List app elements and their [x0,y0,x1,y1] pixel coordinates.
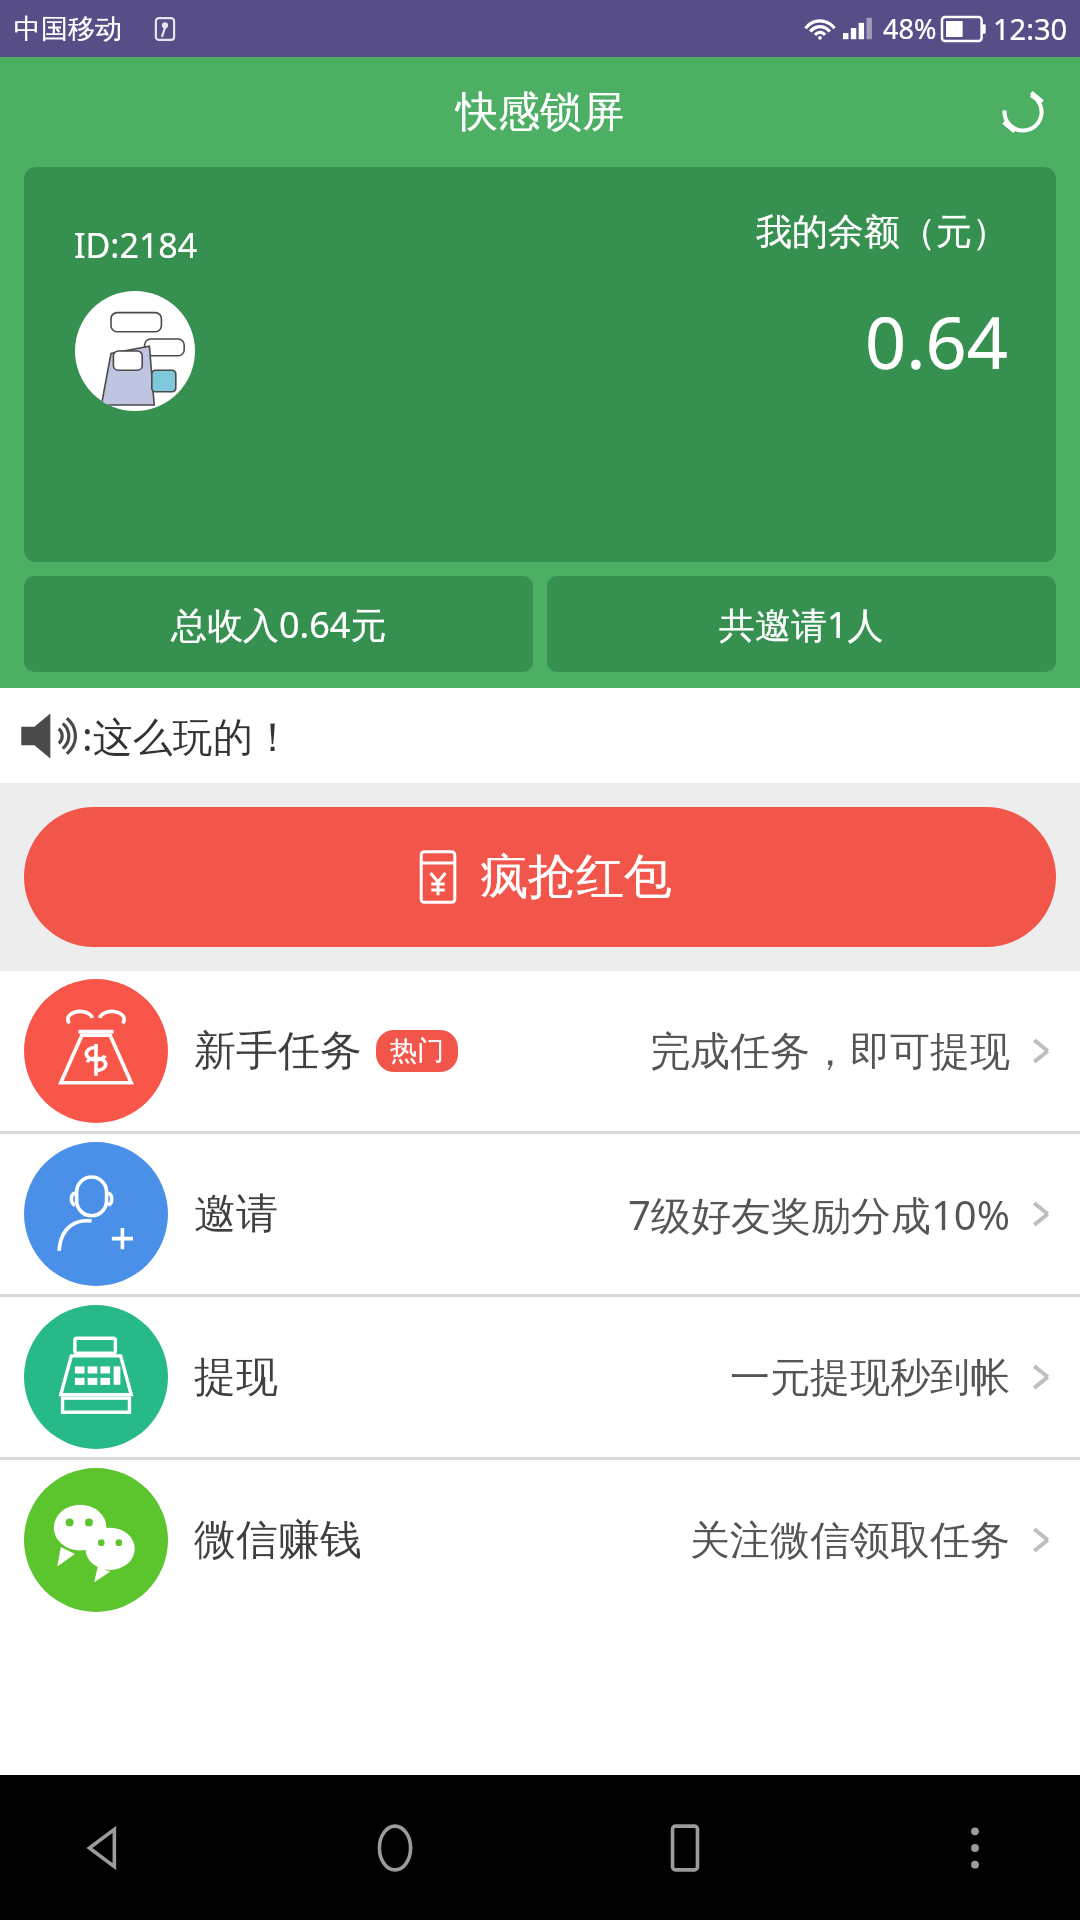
staticText: 7级好友奖励分成10% [628,1187,1010,1242]
staticText: 一元提现秒到帐 [730,1352,1010,1402]
button[interactable]: ID:2184 [24,167,1056,562]
staticText: 提现 [194,1351,278,1404]
button[interactable]: 总收入0.64元 [24,576,533,672]
button[interactable]: Recent apps [640,1803,730,1893]
button[interactable]: 共邀请1人 [547,576,1056,672]
staticText: 0.64 [865,292,1008,390]
staticText: 我的余额（元） [756,209,1008,254]
staticText: 总收入0.64元 [171,600,387,649]
staticText: 48% [883,10,937,47]
button[interactable]: 疯抢红包 [24,807,1056,947]
button[interactable]: 邀请 [0,1134,1080,1294]
button[interactable]: Home [350,1803,440,1893]
staticText: 完成任务，即可提现 [650,1026,1010,1076]
staticText: 新手任务 [194,1025,362,1078]
staticText: 中国移动 [14,12,122,46]
staticText: ID:2184 [74,222,198,268]
button[interactable]: :这么玩的！ [0,688,1080,783]
staticText: 快感锁屏 [456,86,624,139]
staticText: 疯抢红包 [480,847,672,907]
staticText: 邀请 [194,1188,278,1241]
button[interactable]: 微信赚钱 [0,1460,1080,1620]
staticText: :这么玩的！ [82,708,293,763]
staticText: 共邀请1人 [719,600,884,649]
staticText: 12:30 [993,9,1068,48]
staticText: 关注微信领取任务 [690,1515,1010,1565]
button[interactable]: Back [60,1803,150,1893]
button[interactable]: More options [930,1803,1020,1893]
button[interactable]: 提现 [0,1297,1080,1457]
button[interactable]: 新手任务 [0,971,1080,1131]
button[interactable]: Refresh [994,83,1052,141]
staticText: 热门 [390,1034,444,1068]
staticText: 微信赚钱 [194,1514,362,1567]
